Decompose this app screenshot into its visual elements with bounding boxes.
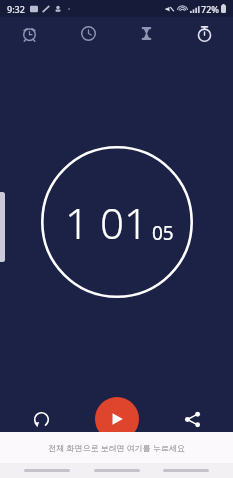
button[interactable]: Timer [117, 17, 175, 49]
button[interactable]: Share [171, 398, 213, 440]
staticText: 9:32 [7, 3, 25, 15]
button[interactable]: Alarm [0, 17, 59, 49]
button[interactable]: Start [95, 397, 139, 441]
button[interactable]: 전체 화면으로 보려면 여기를 누르세요 [0, 432, 233, 463]
staticText: 05 [152, 220, 174, 246]
button[interactable]: Stopwatch [175, 17, 233, 49]
button[interactable]: Navigation [163, 469, 209, 472]
staticText: 1 01 [65, 194, 148, 251]
staticText: 72% [201, 3, 219, 15]
button[interactable]: Navigation [24, 469, 70, 472]
button[interactable]: Navigation [94, 469, 140, 472]
staticText: 전체 화면으로 보려면 여기를 누르세요 [48, 442, 185, 453]
button[interactable]: Reset [20, 398, 62, 440]
button[interactable]: World clock [59, 17, 117, 49]
